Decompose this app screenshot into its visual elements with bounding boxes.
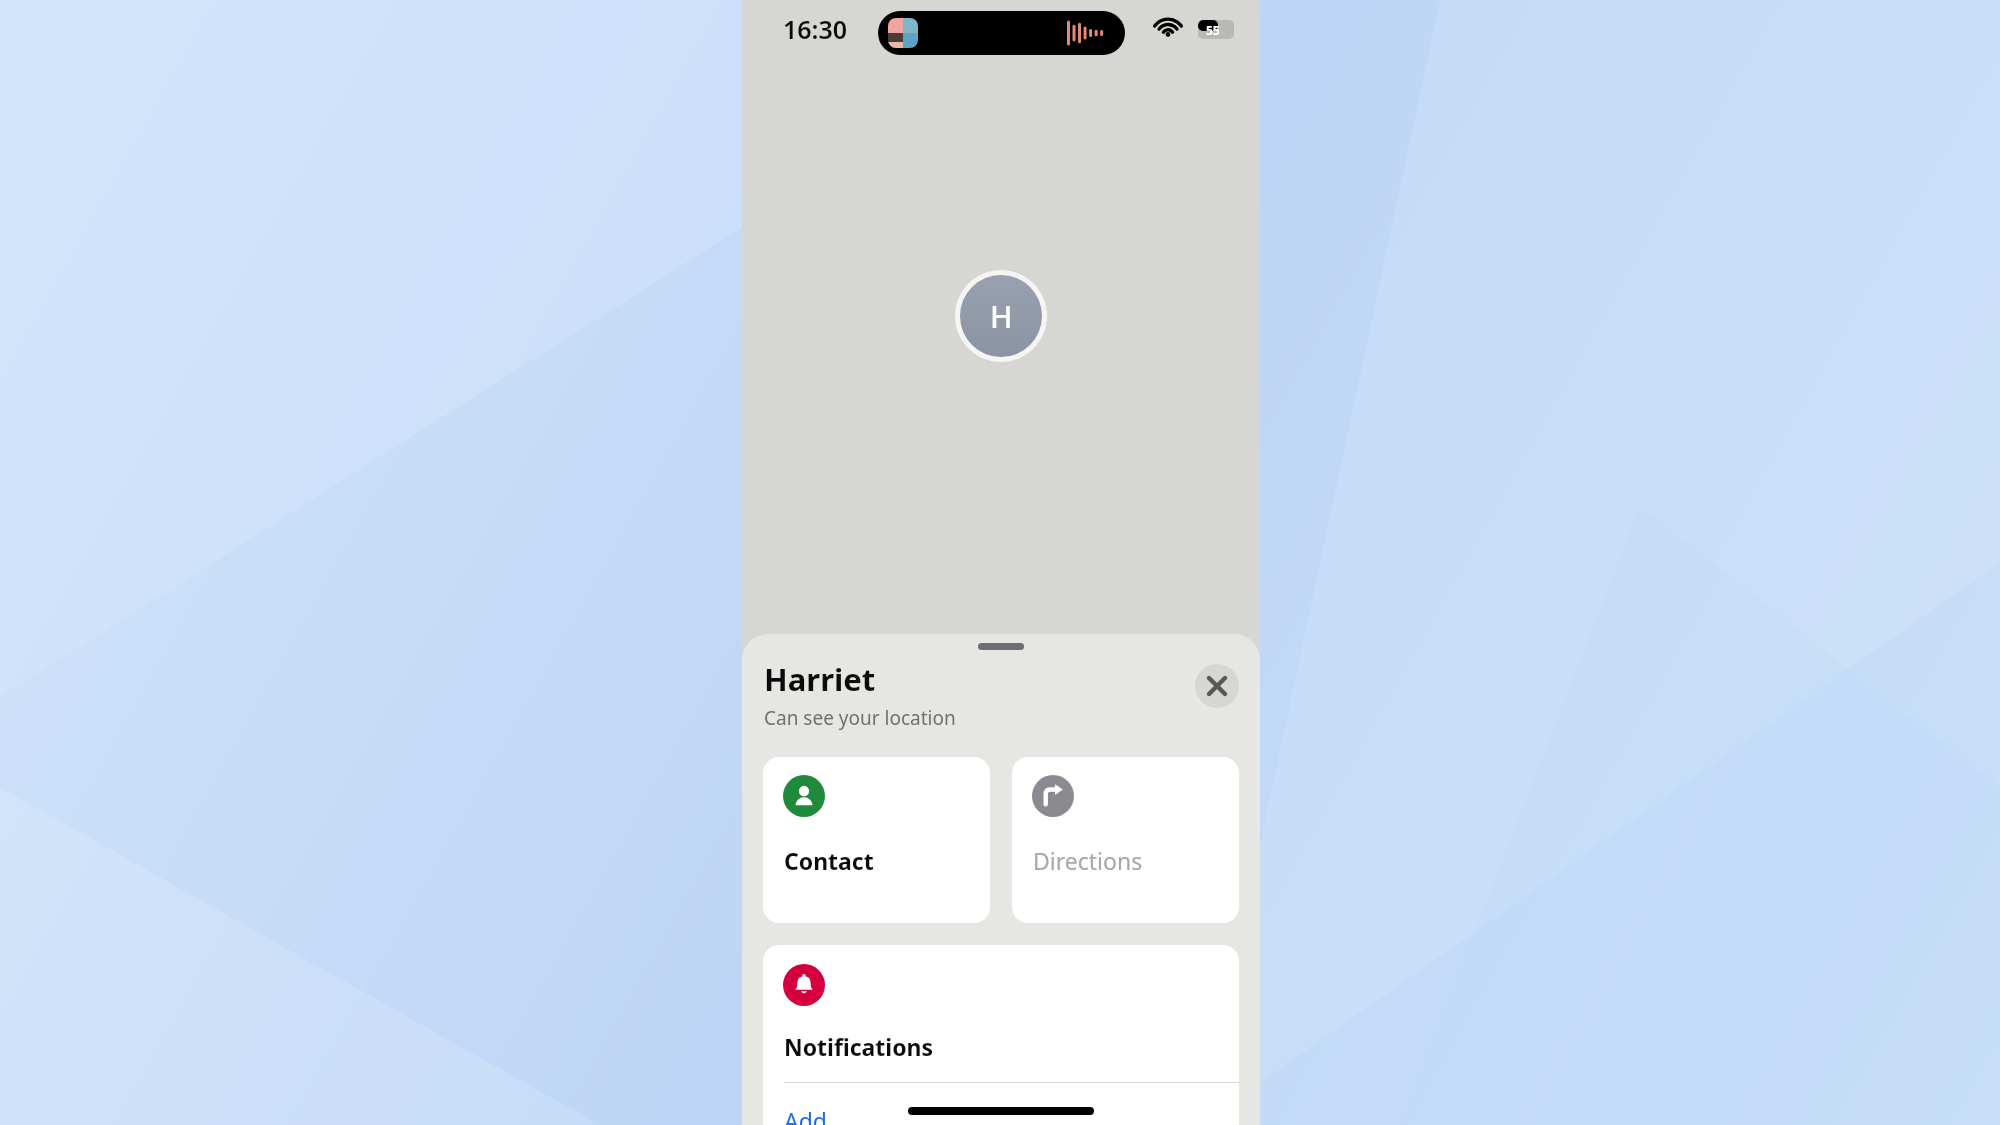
staticText: Add [784, 1105, 827, 1125]
staticText: Notifications [784, 1031, 934, 1062]
staticText: Can see your location [764, 705, 956, 731]
button[interactable]: Contact [763, 757, 990, 923]
button[interactable]: Close [1195, 664, 1239, 708]
staticText: Harriet [764, 658, 876, 700]
staticText: Contact [784, 845, 874, 876]
staticText: H [990, 296, 1013, 337]
staticText: Directions [1033, 845, 1143, 876]
button[interactable]: Directions [1012, 757, 1239, 923]
staticText: 16:30 [783, 12, 848, 46]
staticText: 55 [1206, 22, 1220, 38]
button[interactable]: Add [763, 1105, 1239, 1125]
